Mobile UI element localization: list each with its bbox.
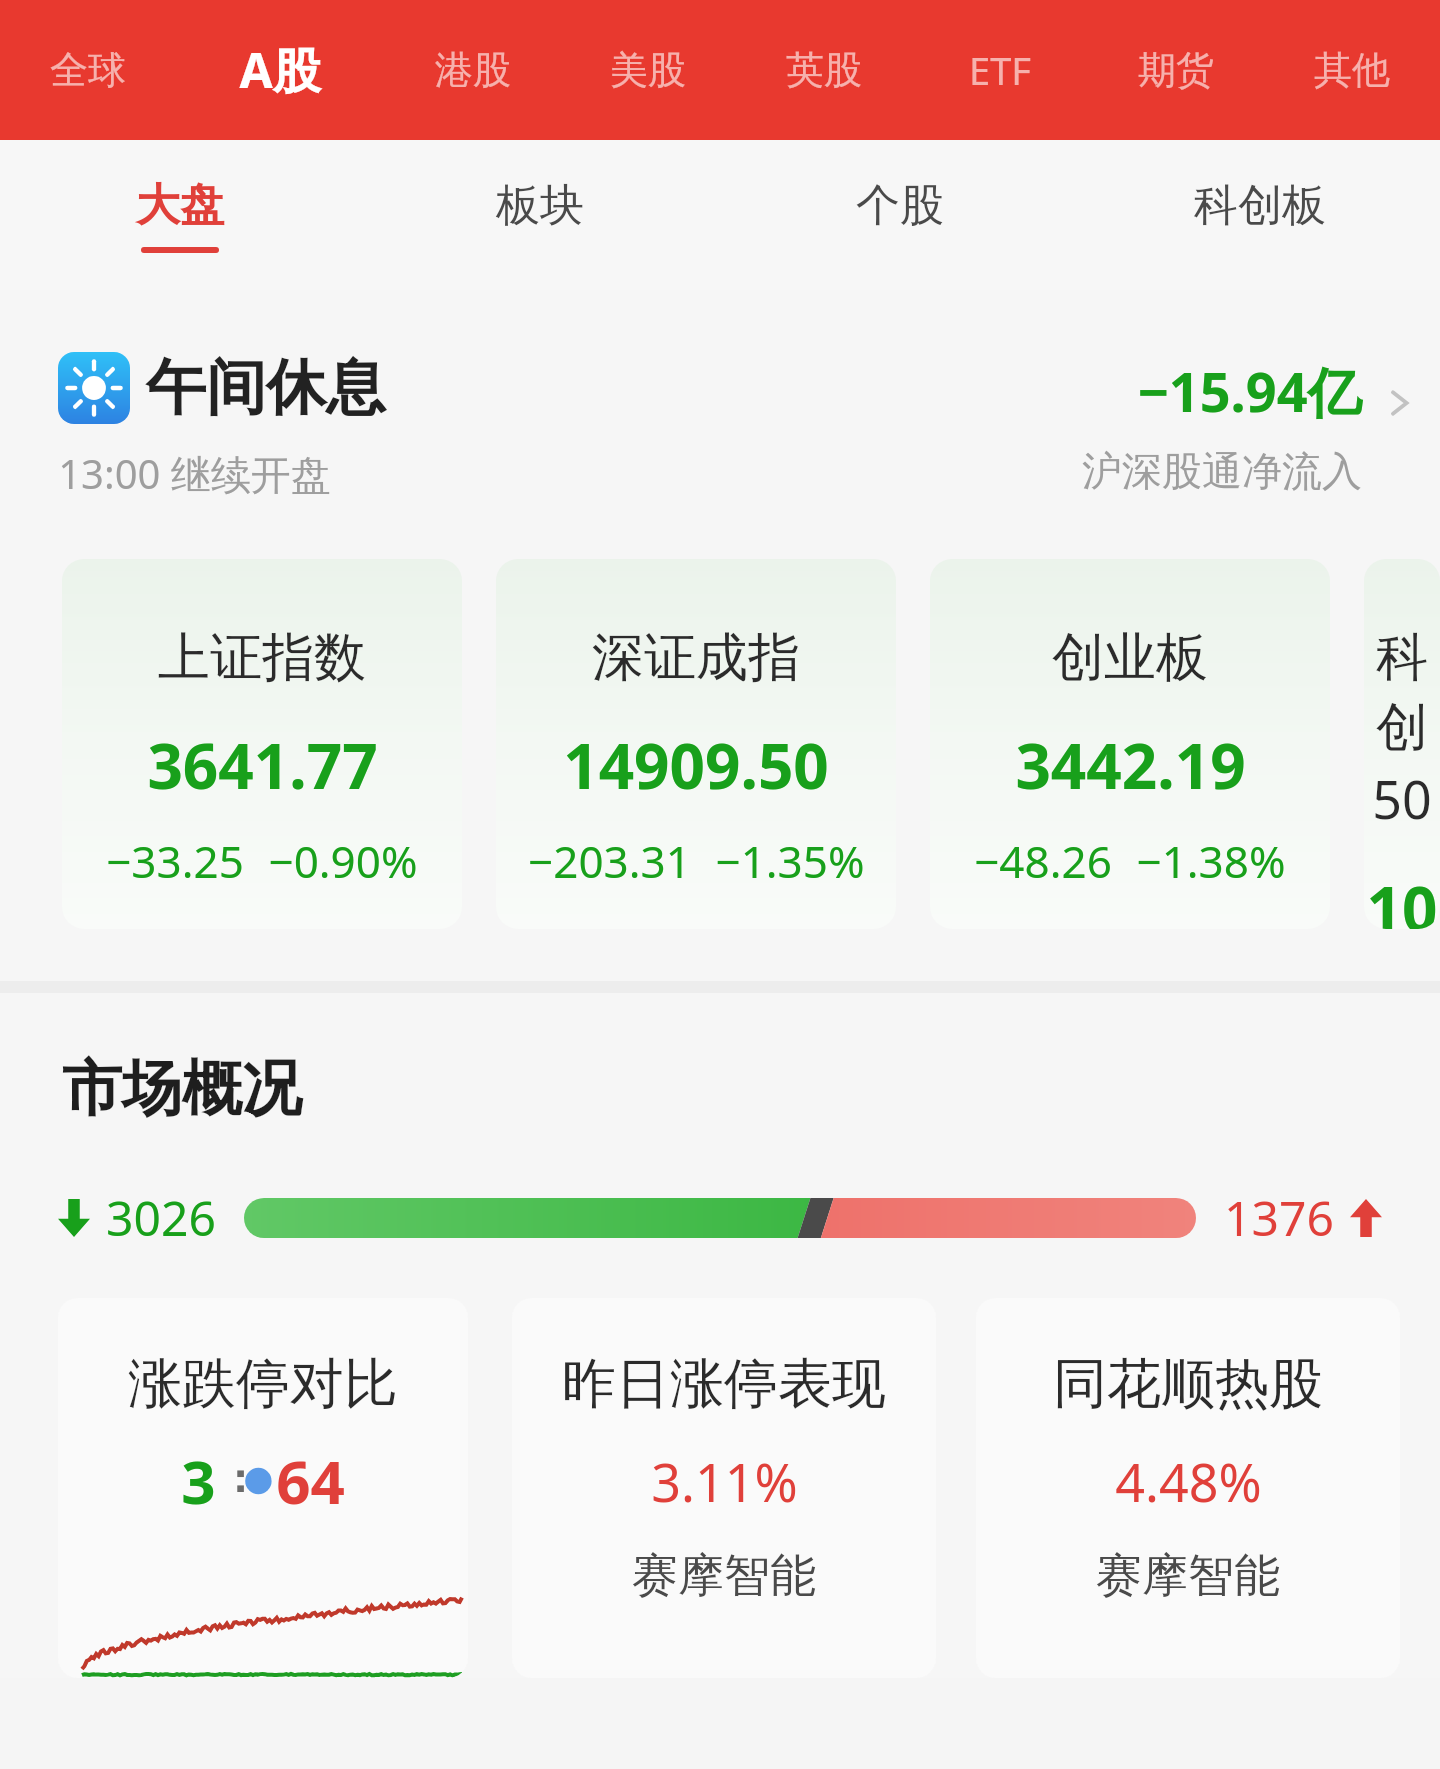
button[interactable]: 期货 — [1088, 0, 1264, 140]
staticText: A股 — [239, 37, 321, 103]
staticText: 14909.50 — [563, 723, 829, 807]
staticText: 昨日涨停表现 — [562, 1350, 886, 1418]
staticText: 64 — [276, 1440, 345, 1522]
staticText: 大盘 — [136, 178, 224, 233]
button[interactable]: 午间休息 — [0, 350, 1440, 501]
staticText: 个股 — [856, 178, 944, 233]
button[interactable]: 同花顺热股 — [976, 1298, 1400, 1678]
button[interactable]: 大盘 — [0, 140, 360, 290]
staticText: 其他 — [1314, 46, 1390, 94]
staticText: −15.94亿 — [1137, 354, 1362, 428]
staticText: 沪深股通净流入 — [1082, 446, 1362, 496]
staticText: 3.11% — [651, 1446, 798, 1517]
button[interactable]: 港股 — [385, 0, 560, 140]
staticText: 创业板 — [1052, 625, 1208, 691]
button[interactable]: 板块 — [360, 140, 720, 290]
staticText: −48.26 — [974, 831, 1112, 891]
button[interactable]: ETF — [912, 0, 1088, 140]
staticText: 13:00 继续开盘 — [58, 446, 331, 501]
button[interactable]: 科创板 — [1080, 140, 1440, 290]
button[interactable]: 涨跌停对比 — [58, 1298, 468, 1678]
staticText: 深证成指 — [592, 625, 800, 691]
staticText: 英股 — [786, 46, 862, 94]
staticText: 美股 — [610, 46, 686, 94]
staticText: −0.90% — [268, 831, 418, 891]
button[interactable]: 深证成指 — [496, 559, 896, 929]
staticText: 3641.77 — [147, 723, 378, 807]
other: 查看详情 — [1380, 384, 1418, 422]
button[interactable]: 美股 — [560, 0, 736, 140]
staticText: 4.48% — [1115, 1446, 1262, 1517]
staticText: ETF — [969, 44, 1031, 96]
staticText: 3442.19 — [1015, 723, 1246, 807]
button[interactable]: 其他 — [1264, 0, 1440, 140]
staticText: 赛摩智能 — [632, 1547, 816, 1605]
staticText: 3026 — [106, 1185, 216, 1250]
staticText: 港股 — [435, 46, 511, 94]
button[interactable]: 上证指数 — [62, 559, 462, 929]
button[interactable]: 创业板 — [930, 559, 1330, 929]
button[interactable]: 全球 — [0, 0, 175, 140]
staticText: 科创板 — [1194, 178, 1326, 233]
staticText: 1376 — [1224, 1185, 1334, 1250]
staticText: 1019.33 — [1364, 866, 1440, 929]
staticText: 科创50 — [1364, 625, 1440, 834]
button[interactable]: 个股 — [720, 140, 1080, 290]
staticText: 市场概况 — [62, 1051, 302, 1127]
staticText: 涨跌停对比 — [128, 1350, 398, 1418]
staticText: 同花顺热股 — [1053, 1350, 1323, 1418]
staticText: −1.35% — [715, 831, 865, 891]
staticText: 上证指数 — [158, 625, 366, 691]
staticText: −33.25 — [106, 831, 244, 891]
staticText: 午间休息 — [146, 350, 386, 426]
staticText: 赛摩智能 — [1096, 1547, 1280, 1605]
staticText: 3 — [181, 1440, 216, 1522]
staticText: 板块 — [496, 178, 584, 233]
button[interactable]: 昨日涨停表现 — [512, 1298, 936, 1678]
button[interactable]: A股 — [175, 0, 385, 140]
button[interactable]: 英股 — [736, 0, 912, 140]
staticText: −203.31 — [528, 831, 691, 891]
staticText: −1.38% — [1136, 831, 1286, 891]
staticText: 全球 — [50, 46, 126, 94]
button[interactable]: 科创50 — [1364, 559, 1440, 929]
staticText: 期货 — [1138, 46, 1214, 94]
